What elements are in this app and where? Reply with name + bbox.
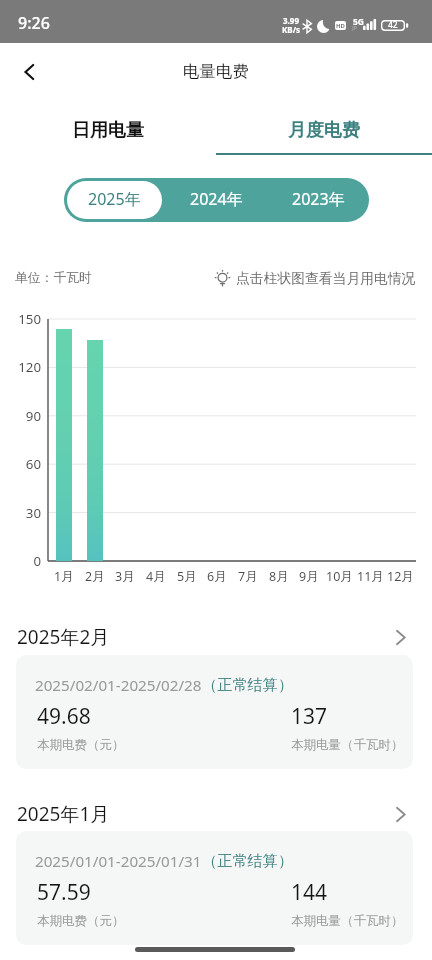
button[interactable]: 日用电量: [0, 98, 216, 155]
staticText: 8月: [269, 568, 289, 585]
staticText: 6月: [207, 568, 227, 585]
staticText: 60: [0, 455, 41, 473]
staticText: 本期电量（千瓦时）: [291, 737, 404, 753]
staticText: 月度电费: [288, 119, 360, 142]
staticText: HD: [336, 22, 345, 30]
button[interactable]: Back: [8, 51, 48, 91]
staticText: 5月: [177, 568, 197, 585]
button[interactable]: [293, 319, 324, 561]
staticText: 2025年2月: [17, 624, 110, 650]
staticText: 2023年: [292, 188, 345, 210]
staticText: （正常结算）: [202, 675, 294, 694]
staticText: 11月: [357, 568, 384, 585]
staticText: 10月: [326, 568, 353, 585]
staticText: 3月: [115, 568, 135, 585]
button[interactable]: [79, 319, 110, 561]
staticText: 5G: [353, 16, 365, 28]
staticText: 2025/02/01-2025/02/28: [35, 675, 202, 696]
button[interactable]: 点击柱状图查看当月用电情况: [214, 270, 416, 287]
staticText: 日用电量: [72, 119, 144, 142]
staticText: 4月: [146, 568, 166, 585]
staticText: 3.99: [283, 15, 299, 26]
button[interactable]: [385, 319, 416, 561]
button[interactable]: [232, 319, 263, 561]
staticText: 本期电量（千瓦时）: [291, 913, 404, 929]
button[interactable]: [48, 319, 79, 561]
staticText: 0: [0, 552, 41, 570]
button[interactable]: [171, 319, 202, 561]
staticText: 单位：千瓦时: [15, 270, 92, 286]
staticText: 2025/01/01-2025/01/31: [35, 851, 202, 872]
staticText: 120: [0, 358, 41, 376]
button[interactable]: 2025年2月: [0, 621, 432, 653]
button[interactable]: [355, 319, 386, 561]
staticText: 9月: [299, 568, 319, 585]
staticText: 电量电费: [183, 61, 249, 82]
staticText: 90: [0, 407, 41, 425]
staticText: 2024年: [190, 188, 243, 210]
staticText: 12月: [387, 568, 414, 585]
staticText: 1月: [54, 568, 74, 585]
staticText: 144: [291, 878, 328, 907]
button[interactable]: [109, 319, 140, 561]
button[interactable]: 2025年: [67, 181, 162, 219]
staticText: 2025年1月: [17, 801, 110, 827]
staticText: 9:26: [18, 12, 50, 34]
button[interactable]: [263, 319, 294, 561]
staticText: 49.68: [37, 702, 91, 731]
button[interactable]: [324, 319, 355, 561]
staticText: 2025年: [88, 188, 141, 210]
staticText: 137: [291, 702, 328, 731]
staticText: KB/s: [282, 24, 300, 35]
staticText: JP: [352, 24, 358, 31]
staticText: 本期电费（元）: [37, 737, 125, 753]
button[interactable]: 2024年: [165, 178, 267, 222]
staticText: 150: [0, 310, 41, 328]
staticText: 42: [388, 19, 398, 30]
staticText: 7月: [238, 568, 258, 585]
staticText: 本期电费（元）: [37, 913, 125, 929]
button[interactable]: 2025年1月: [0, 798, 432, 830]
button[interactable]: 月度电费: [216, 98, 432, 155]
button[interactable]: [201, 319, 232, 561]
staticText: （正常结算）: [202, 851, 294, 870]
staticText: 点击柱状图查看当月用电情况: [236, 270, 416, 287]
button[interactable]: 2023年: [267, 178, 369, 222]
button[interactable]: [140, 319, 171, 561]
staticText: 2月: [85, 568, 105, 585]
staticText: 57.59: [37, 878, 91, 907]
staticText: 30: [0, 504, 41, 522]
